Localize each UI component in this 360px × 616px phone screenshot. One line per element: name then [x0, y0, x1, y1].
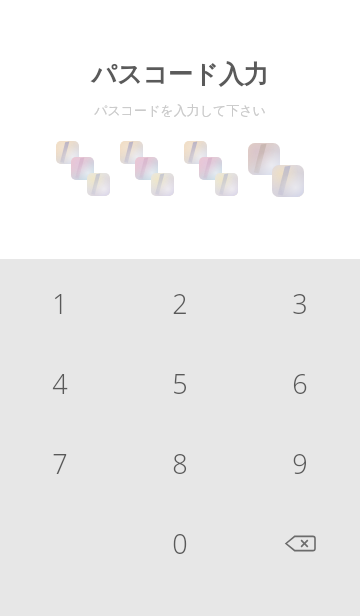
staticText: 7 — [52, 445, 68, 482]
button[interactable]: 4 — [0, 343, 120, 423]
staticText: 5 — [172, 365, 188, 402]
staticText: パスコードを入力して下さい — [94, 102, 266, 118]
button[interactable]: 7 — [0, 423, 120, 503]
staticText: 2 — [172, 285, 188, 322]
staticText: パスコード入力 — [91, 59, 269, 90]
staticText: 4 — [52, 365, 68, 402]
button[interactable]: 1 — [0, 263, 120, 343]
button[interactable]: 6 — [240, 343, 360, 423]
button[interactable]: 9 — [240, 423, 360, 503]
staticText: 8 — [172, 445, 188, 482]
staticText: 0 — [172, 525, 188, 562]
staticText: 3 — [292, 285, 308, 322]
button[interactable]: 0 — [120, 503, 240, 583]
button[interactable]: 8 — [120, 423, 240, 503]
button[interactable]: 2 — [120, 263, 240, 343]
button[interactable]: 3 — [240, 263, 360, 343]
staticText: 6 — [292, 365, 308, 402]
button[interactable]: Delete — [240, 503, 360, 583]
staticText: 9 — [292, 445, 308, 482]
staticText: 1 — [52, 285, 68, 322]
button[interactable]: 5 — [120, 343, 240, 423]
